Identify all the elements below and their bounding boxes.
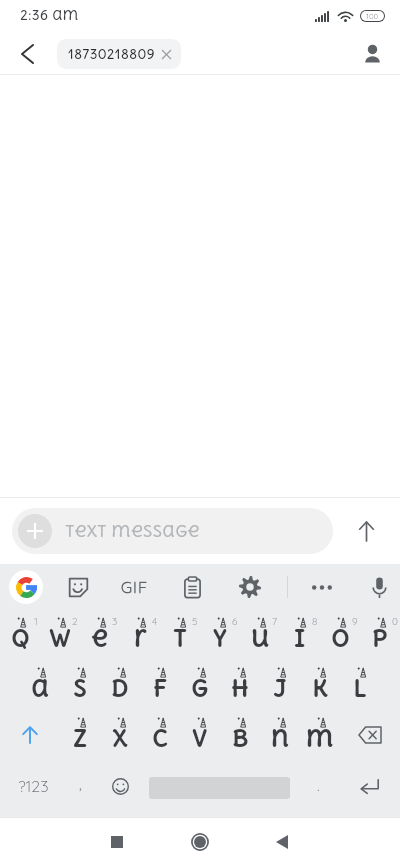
staticText: j	[273, 673, 287, 703]
button[interactable]: ,	[62, 760, 98, 812]
staticText: z	[73, 723, 88, 753]
button[interactable]: d	[100, 660, 140, 710]
button[interactable]: 18730218809	[57, 39, 181, 69]
button[interactable]: h	[220, 660, 260, 710]
button[interactable]: b	[220, 710, 260, 760]
staticText: v	[192, 723, 208, 753]
button[interactable]: r	[120, 610, 160, 660]
staticText: a	[31, 673, 50, 703]
staticText: 18730218809	[68, 46, 155, 62]
button[interactable]: l	[340, 660, 380, 710]
button[interactable]: Google	[7, 568, 45, 606]
button[interactable]: Back	[260, 820, 304, 864]
button[interactable]: e	[80, 610, 120, 660]
button[interactable]: c	[140, 710, 180, 760]
button[interactable]: o	[320, 610, 360, 660]
staticText: ?123	[18, 776, 49, 796]
staticText: 2	[72, 615, 78, 628]
button[interactable]: x	[100, 710, 140, 760]
button[interactable]: Settings	[231, 568, 269, 606]
staticText: s	[73, 673, 87, 703]
staticText: h	[231, 673, 249, 703]
button[interactable]: Shift	[0, 710, 60, 760]
button[interactable]: p	[360, 610, 400, 660]
button[interactable]: j	[260, 660, 300, 710]
staticText: 9	[352, 615, 358, 628]
button[interactable]: k	[300, 660, 340, 710]
button[interactable]: Home	[178, 820, 222, 864]
staticText: GIF	[121, 577, 149, 597]
button[interactable]: Back	[9, 35, 46, 72]
staticText: e	[91, 623, 109, 653]
staticText: w	[49, 623, 71, 653]
button[interactable]: q	[0, 610, 40, 660]
staticText: g	[191, 673, 209, 703]
staticText: Text message	[65, 521, 200, 541]
button[interactable]: m	[300, 710, 340, 760]
button[interactable]: Stickers	[59, 568, 97, 606]
button[interactable]: Enter	[348, 760, 390, 812]
staticText: f	[153, 673, 168, 703]
staticText: 100	[366, 11, 379, 21]
staticText: l	[353, 673, 367, 703]
button[interactable]: Contact details	[352, 34, 392, 74]
staticText: n	[271, 723, 290, 753]
staticText: 4	[152, 615, 158, 628]
staticText: d	[111, 673, 129, 703]
staticText: ,	[79, 773, 82, 793]
staticText: k	[312, 673, 329, 703]
button[interactable]: v	[180, 710, 220, 760]
staticText: 8	[312, 615, 318, 628]
button[interactable]: Clipboard	[173, 568, 211, 606]
button[interactable]: f	[140, 660, 180, 710]
button[interactable]: Recents	[95, 820, 139, 864]
staticText: 2:36 am	[20, 7, 79, 23]
staticText: 6	[232, 615, 238, 628]
button[interactable]: u	[240, 610, 280, 660]
button[interactable]: w	[40, 610, 80, 660]
staticText: q	[11, 623, 30, 653]
button[interactable]: Text message	[12, 508, 333, 554]
button[interactable]: Emoji	[102, 760, 138, 812]
staticText: i	[294, 623, 306, 653]
staticText: 3	[112, 615, 118, 628]
button[interactable]: ?123	[10, 760, 56, 812]
staticText: 7	[272, 615, 278, 628]
button[interactable]: i	[280, 610, 320, 660]
button[interactable]: Voice input	[360, 568, 398, 606]
button[interactable]: a	[20, 660, 60, 710]
staticText: 0	[392, 615, 398, 628]
staticText: .	[317, 775, 320, 795]
staticText: u	[251, 623, 270, 653]
staticText: r	[134, 623, 147, 653]
staticText: c	[152, 723, 169, 753]
button[interactable]: z	[60, 710, 100, 760]
button[interactable]: t	[160, 610, 200, 660]
staticText: y	[213, 623, 227, 653]
staticText: 5	[192, 615, 198, 628]
staticText: m	[306, 723, 334, 753]
button[interactable]: Send	[344, 509, 388, 553]
button[interactable]: More options	[303, 568, 341, 606]
button[interactable]: n	[260, 710, 300, 760]
button[interactable]: GIF	[115, 567, 155, 607]
button[interactable]: y	[200, 610, 240, 660]
staticText: b	[232, 723, 249, 753]
staticText: o	[331, 623, 350, 653]
button[interactable]: s	[60, 660, 100, 710]
staticText: x	[112, 723, 129, 753]
button[interactable]: g	[180, 660, 220, 710]
staticText: p	[372, 623, 388, 653]
button[interactable]: Backspace	[340, 710, 400, 760]
staticText: t	[173, 623, 187, 653]
staticText: 1	[34, 615, 38, 628]
